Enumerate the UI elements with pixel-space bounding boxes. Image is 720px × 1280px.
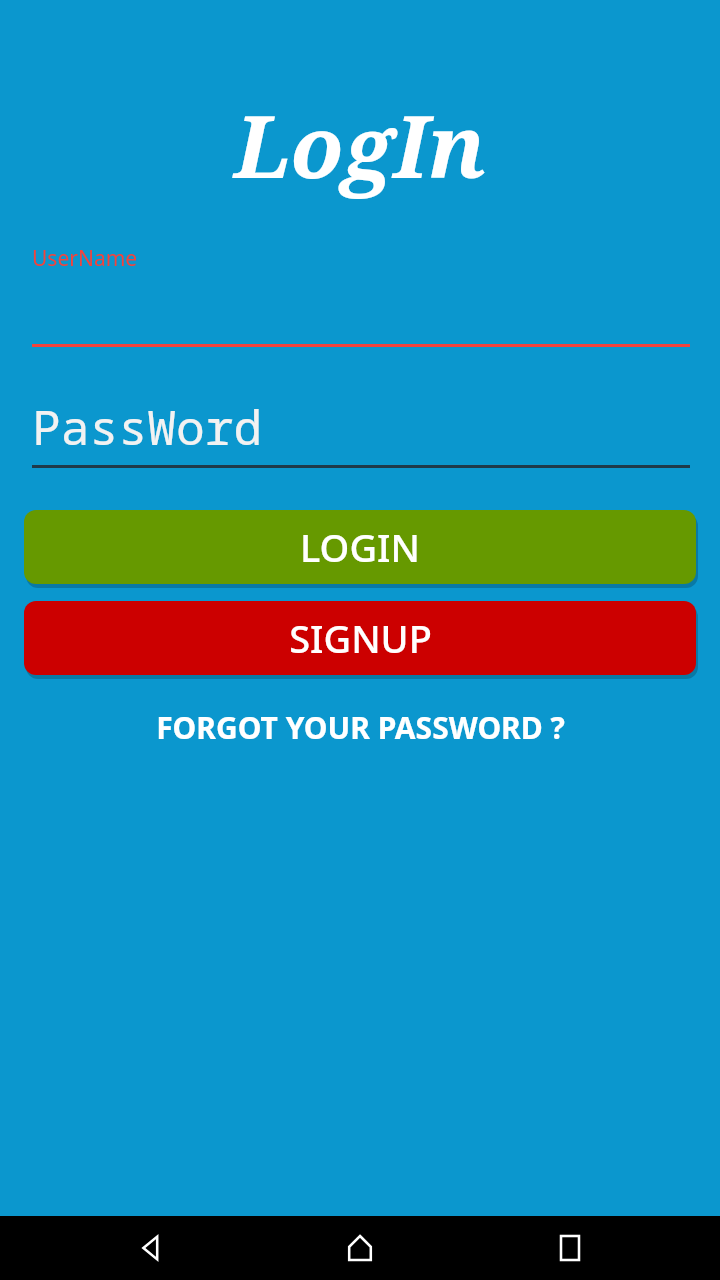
staticText: LOGIN <box>300 521 420 573</box>
button[interactable]: UserName <box>32 230 690 347</box>
button[interactable]: PassWord <box>32 347 690 468</box>
button[interactable]: Recent apps <box>510 1216 630 1280</box>
staticText: SIGNUP <box>289 612 432 664</box>
staticText: FORGOT YOUR PASSWORD ? <box>156 707 565 748</box>
staticText: LogIn <box>234 86 486 203</box>
button[interactable]: Home <box>300 1216 420 1280</box>
button[interactable]: LOGIN <box>24 510 696 584</box>
button[interactable]: SIGNUP <box>24 601 696 675</box>
button[interactable]: FORGOT YOUR PASSWORD ? <box>0 707 720 748</box>
staticText: UserName <box>32 244 138 273</box>
button[interactable]: Back <box>90 1216 210 1280</box>
staticText: PassWord <box>32 394 263 459</box>
